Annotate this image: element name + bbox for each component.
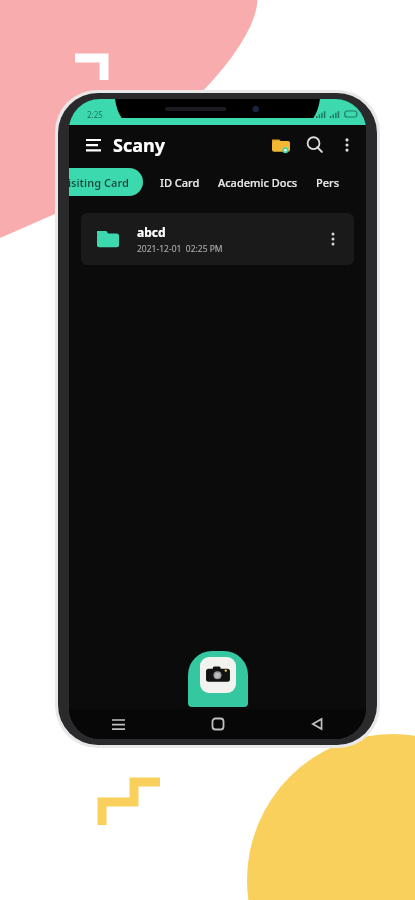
staticText: abcd bbox=[137, 224, 166, 240]
button[interactable]: Search bbox=[298, 128, 332, 162]
button[interactable]: Personal Tag bbox=[307, 168, 352, 196]
staticText: ID Card bbox=[160, 175, 200, 190]
button[interactable]: abcd bbox=[81, 213, 354, 265]
button[interactable]: More options bbox=[332, 130, 362, 160]
button[interactable]: ID Card bbox=[151, 168, 209, 196]
button[interactable]: Home bbox=[168, 709, 267, 739]
button[interactable]: New folder bbox=[264, 128, 298, 162]
button[interactable]: Scan with camera bbox=[188, 651, 248, 707]
button[interactable]: Item options bbox=[318, 224, 348, 254]
button[interactable]: Visiting Card bbox=[69, 168, 143, 196]
staticText: Visiting Card bbox=[69, 175, 129, 190]
button[interactable]: Academic Docs bbox=[209, 168, 307, 196]
staticText: 2021-12-01 02:25 PM bbox=[137, 243, 223, 255]
staticText: Scany bbox=[113, 133, 165, 158]
staticText: 2:25 bbox=[87, 109, 103, 120]
button[interactable]: Menu bbox=[77, 129, 109, 161]
button[interactable]: Recents bbox=[69, 709, 168, 739]
button[interactable]: Back bbox=[267, 709, 366, 739]
staticText: Personal Tag bbox=[316, 175, 343, 190]
staticText: Academic Docs bbox=[218, 175, 298, 190]
